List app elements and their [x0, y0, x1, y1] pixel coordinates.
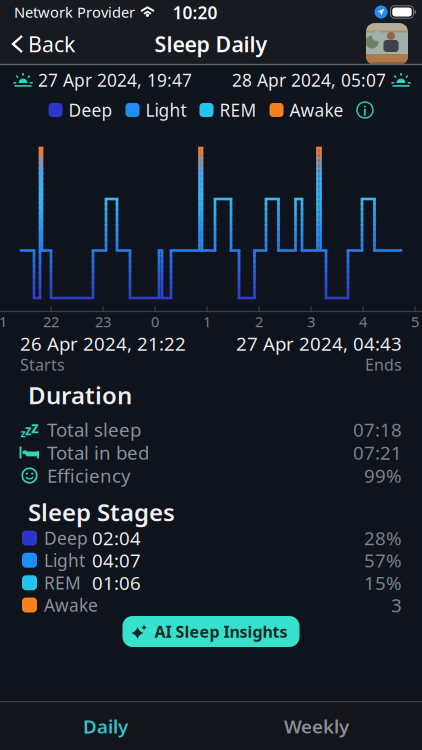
staticText: 2	[255, 312, 263, 331]
staticText: Deep	[44, 526, 88, 549]
staticText: Light	[44, 549, 85, 572]
button[interactable]: Weekly	[211, 702, 422, 750]
staticText: Duration	[28, 379, 132, 411]
staticText: 04:07	[92, 548, 141, 573]
staticText: Sleep Stages	[28, 496, 175, 528]
staticText: i	[363, 102, 367, 119]
staticText: Weekly	[284, 714, 349, 739]
staticText: 99%	[364, 463, 402, 488]
staticText: 01:06	[92, 570, 141, 595]
staticText: Efficiency	[47, 463, 131, 488]
staticText: Awake	[44, 593, 98, 616]
staticText: 3	[391, 593, 402, 617]
staticText: z	[25, 421, 32, 439]
staticText: 27 Apr 2024, 19:47	[38, 68, 192, 91]
staticText: 02:04	[92, 526, 141, 550]
staticText: Deep	[68, 98, 112, 121]
staticText: 5	[411, 312, 419, 331]
staticText: Starts	[20, 354, 65, 375]
staticText: Ends	[365, 354, 402, 375]
staticText: Awake	[289, 98, 343, 121]
staticText: Network Provider	[14, 2, 135, 22]
staticText: AI Sleep Insights	[154, 621, 287, 642]
button[interactable]: Daily	[0, 702, 211, 750]
staticText: 22	[43, 312, 59, 331]
staticText: 15%	[364, 570, 402, 595]
staticText: Daily	[83, 714, 128, 739]
staticText: 0	[151, 312, 159, 331]
staticText: Light	[145, 98, 186, 121]
staticText: Back	[28, 30, 75, 58]
staticText: 57%	[364, 548, 402, 573]
staticText: 26 Apr 2024, 21:22	[20, 331, 186, 356]
staticText: 4	[359, 312, 367, 331]
staticText: z	[20, 426, 25, 440]
staticText: 07:21	[353, 440, 402, 465]
button[interactable]: 27 Apr 2024, 19:47	[13, 68, 192, 91]
staticText: Sleep Daily	[154, 30, 267, 58]
staticText: Total in bed	[47, 440, 149, 465]
button[interactable]: i	[356, 101, 373, 118]
staticText: 28%	[364, 526, 402, 550]
staticText: 10:20	[172, 1, 217, 24]
staticText: z	[31, 416, 39, 438]
button[interactable]: Back	[0, 30, 75, 58]
staticText: 1	[203, 312, 211, 331]
staticText: REM	[44, 571, 81, 594]
button[interactable]: AI Sleep Insights	[122, 616, 299, 647]
staticText: Total sleep	[47, 417, 141, 442]
staticText: REM	[219, 98, 256, 121]
button[interactable]	[366, 23, 422, 65]
staticText: 27 Apr 2024, 04:43	[236, 331, 402, 356]
staticText: 28 Apr 2024, 05:07	[232, 68, 386, 91]
staticText: 3	[307, 312, 315, 331]
staticText: 07:18	[353, 417, 402, 442]
button[interactable]: 28 Apr 2024, 05:07	[232, 68, 411, 91]
staticText: 23	[95, 312, 111, 331]
staticText: 21	[0, 312, 7, 331]
